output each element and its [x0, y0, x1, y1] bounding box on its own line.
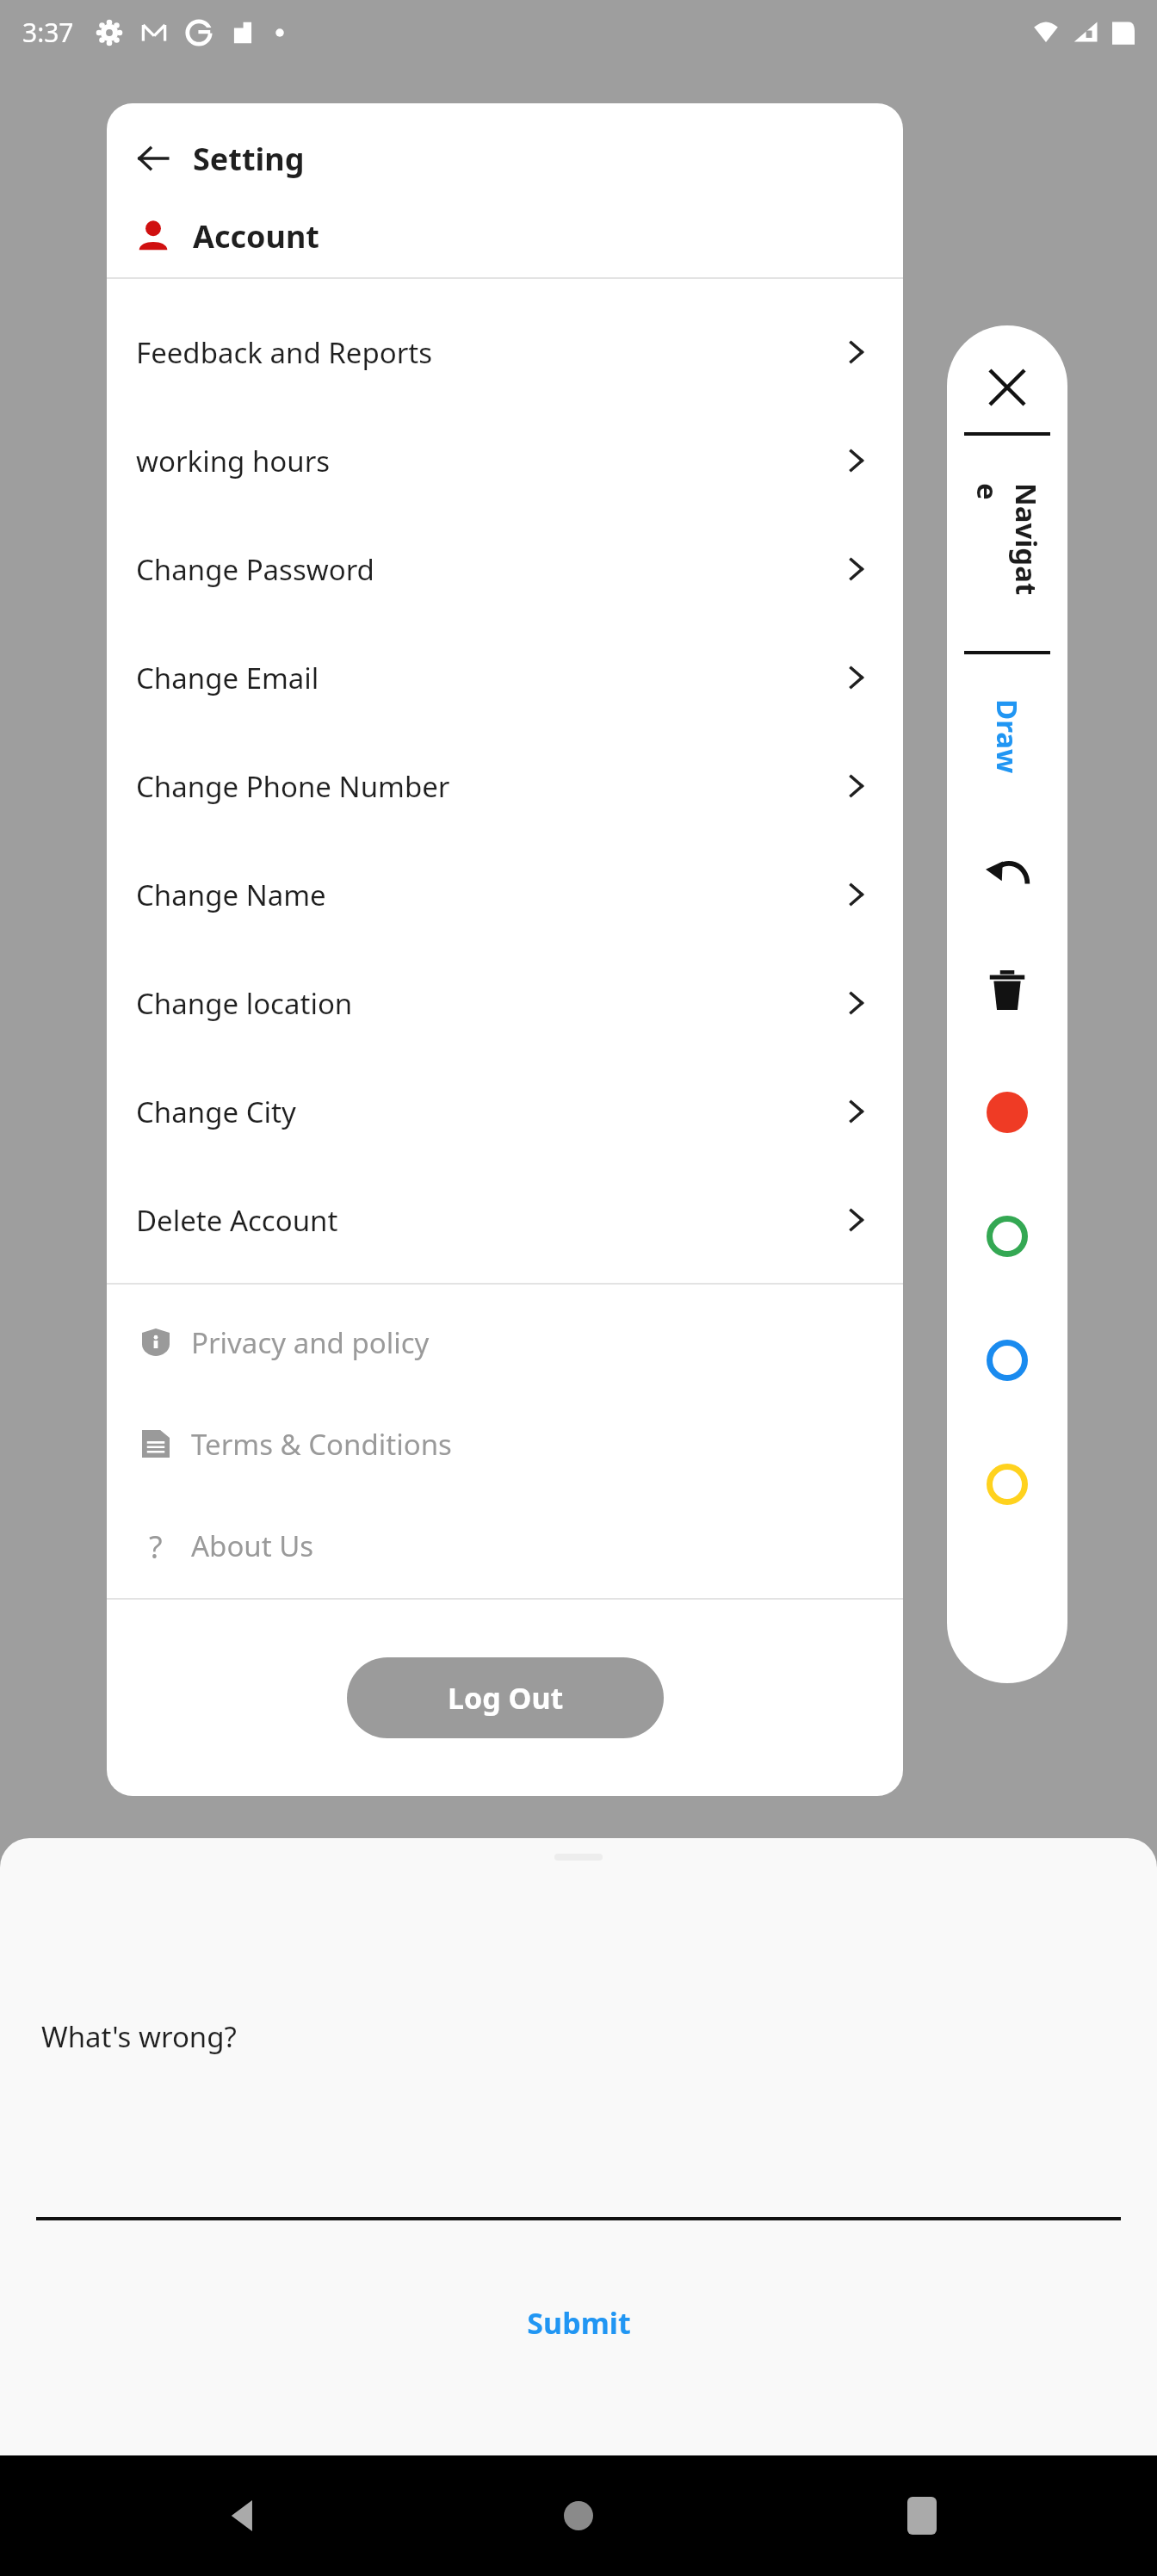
button[interactable]: Feedback and Reports [107, 298, 903, 406]
button[interactable]: Green colour [960, 1174, 1055, 1298]
staticText: 3:37 [22, 15, 74, 50]
staticText: Log Out [448, 1678, 564, 1718]
staticText: Privacy and policy [191, 1323, 430, 1362]
button[interactable]: Undo [960, 818, 1055, 930]
button[interactable]: Delete Account [107, 1166, 903, 1274]
staticText: Change City [136, 1093, 296, 1131]
staticText: Change Name [136, 876, 326, 914]
button[interactable]: Change location [107, 949, 903, 1057]
other: Back [131, 136, 176, 181]
button[interactable]: Back [207, 2477, 284, 2554]
button[interactable]: Recent apps [883, 2477, 961, 2554]
staticText: Change Phone Number [136, 767, 450, 806]
staticText: What's wrong? [41, 2017, 237, 2056]
button[interactable]: Log Out [347, 1657, 664, 1738]
button[interactable]: Navigate [947, 436, 1067, 651]
button[interactable]: Account [107, 195, 903, 277]
button[interactable]: ? [107, 1520, 903, 1570]
button[interactable]: Change City [107, 1057, 903, 1166]
staticText: Change location [136, 984, 353, 1023]
button[interactable]: Change Phone Number [107, 732, 903, 840]
button[interactable]: Red colour [960, 1050, 1055, 1174]
staticText: Submit [527, 2303, 631, 2343]
button[interactable]: Privacy and policy [107, 1317, 903, 1367]
staticText: Change Password [136, 550, 374, 589]
staticText: Terms & Conditions [191, 1425, 452, 1464]
button[interactable]: Yellow colour [960, 1422, 1055, 1546]
button[interactable]: Back [107, 122, 903, 195]
button[interactable]: Terms & Conditions [107, 1419, 903, 1469]
staticText: Delete Account [136, 1201, 338, 1240]
staticText: ? [149, 1526, 163, 1565]
button[interactable]: working hours [107, 406, 903, 515]
staticText: Account [193, 215, 319, 257]
button[interactable]: Submit [503, 2293, 655, 2353]
button[interactable]: Change Email [107, 623, 903, 732]
button[interactable]: Close [978, 358, 1036, 417]
button[interactable]: Change Password [107, 515, 903, 623]
staticText: About Us [191, 1526, 314, 1565]
button[interactable]: Draw [947, 654, 1067, 818]
button[interactable]: Change Name [107, 840, 903, 949]
staticText: Feedback and Reports [136, 333, 433, 372]
button[interactable]: Delete [960, 930, 1055, 1050]
staticText: Change Email [136, 659, 319, 697]
staticText: working hours [136, 442, 331, 480]
button[interactable]: Home [540, 2477, 617, 2554]
staticText: Draw [988, 699, 1027, 774]
staticText: Navigate [968, 483, 1046, 604]
button[interactable]: Blue colour [960, 1298, 1055, 1422]
staticText: Setting [193, 138, 305, 180]
